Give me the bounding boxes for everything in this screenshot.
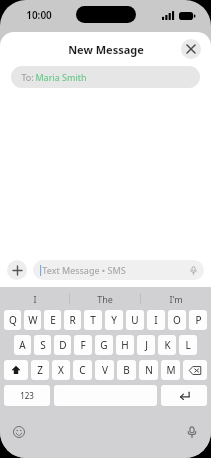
button[interactable]: I'm: [141, 287, 211, 310]
staticText: To:: [20, 71, 35, 83]
button[interactable]: Text Message • SMS: [33, 260, 204, 280]
staticText: T: [90, 313, 96, 327]
staticText: Q: [9, 313, 17, 327]
button[interactable]: E: [44, 310, 61, 330]
button[interactable]: Close: [181, 39, 201, 59]
button[interactable]: return: [161, 385, 207, 406]
button[interactable]: 123: [4, 385, 50, 406]
staticText: W: [28, 313, 38, 327]
staticText: F: [80, 338, 86, 352]
staticText: L: [185, 338, 191, 352]
button[interactable]: Dictation: [185, 425, 199, 439]
button[interactable]: H: [116, 335, 134, 355]
staticText: 123: [20, 390, 34, 401]
button[interactable]: N: [139, 360, 158, 380]
staticText: I: [33, 293, 37, 305]
button[interactable]: M: [161, 360, 180, 380]
button[interactable]: O: [168, 310, 186, 330]
button[interactable]: W: [24, 310, 41, 330]
staticText: J: [145, 338, 148, 352]
button[interactable]: Shift: [4, 360, 28, 380]
staticText: G: [100, 338, 108, 352]
staticText: 10:00: [26, 8, 52, 22]
button[interactable]: R: [64, 310, 81, 330]
staticText: I'm: [169, 293, 183, 305]
button[interactable]: G: [95, 335, 113, 355]
staticText: The: [97, 293, 113, 305]
staticText: I: [154, 313, 158, 327]
staticText: V: [102, 363, 108, 377]
button[interactable]: P: [189, 310, 207, 330]
button[interactable]: X: [52, 360, 70, 380]
button[interactable]: Backspace: [183, 360, 207, 380]
button[interactable]: U: [126, 310, 144, 330]
staticText: A: [19, 338, 26, 352]
staticText: O: [173, 313, 181, 327]
button[interactable]: Add attachment: [7, 260, 27, 280]
staticText: R: [69, 313, 76, 327]
button[interactable]: Z: [31, 360, 49, 380]
staticText: E: [50, 313, 56, 327]
staticText: P: [195, 313, 202, 327]
staticText: New Message: [68, 42, 144, 57]
button[interactable]: A: [14, 335, 31, 355]
staticText: U: [131, 313, 139, 327]
staticText: C: [79, 363, 86, 377]
button[interactable]: I: [0, 287, 69, 310]
staticText: M: [166, 363, 176, 377]
button[interactable]: Emoji: [12, 425, 26, 439]
button[interactable]: C: [73, 360, 92, 380]
staticText: D: [59, 338, 67, 352]
staticText: Maria Smith: [35, 71, 87, 83]
staticText: X: [58, 363, 64, 377]
staticText: H: [121, 338, 129, 352]
button[interactable]: K: [158, 335, 176, 355]
button[interactable]: I: [147, 310, 165, 330]
staticText: Text Message • SMS: [42, 264, 126, 276]
button[interactable]: L: [179, 335, 197, 355]
staticText: N: [145, 363, 153, 377]
other: Backspace: [189, 366, 201, 375]
button[interactable]: The: [70, 287, 140, 310]
button[interactable]: S: [34, 335, 51, 355]
staticText: K: [164, 338, 171, 352]
staticText: Y: [111, 313, 117, 327]
button[interactable]: F: [74, 335, 92, 355]
button[interactable]: J: [137, 335, 155, 355]
button[interactable]: T: [84, 310, 102, 330]
button[interactable]: B: [117, 360, 136, 380]
button[interactable]: To:: [11, 66, 200, 88]
button[interactable]: V: [95, 360, 114, 380]
staticText: B: [123, 363, 130, 377]
other: Shift: [11, 365, 21, 375]
button[interactable]: Y: [105, 310, 123, 330]
staticText: S: [40, 338, 46, 352]
staticText: Z: [37, 363, 43, 377]
button[interactable]: D: [54, 335, 71, 355]
button[interactable]: Q: [4, 310, 21, 330]
